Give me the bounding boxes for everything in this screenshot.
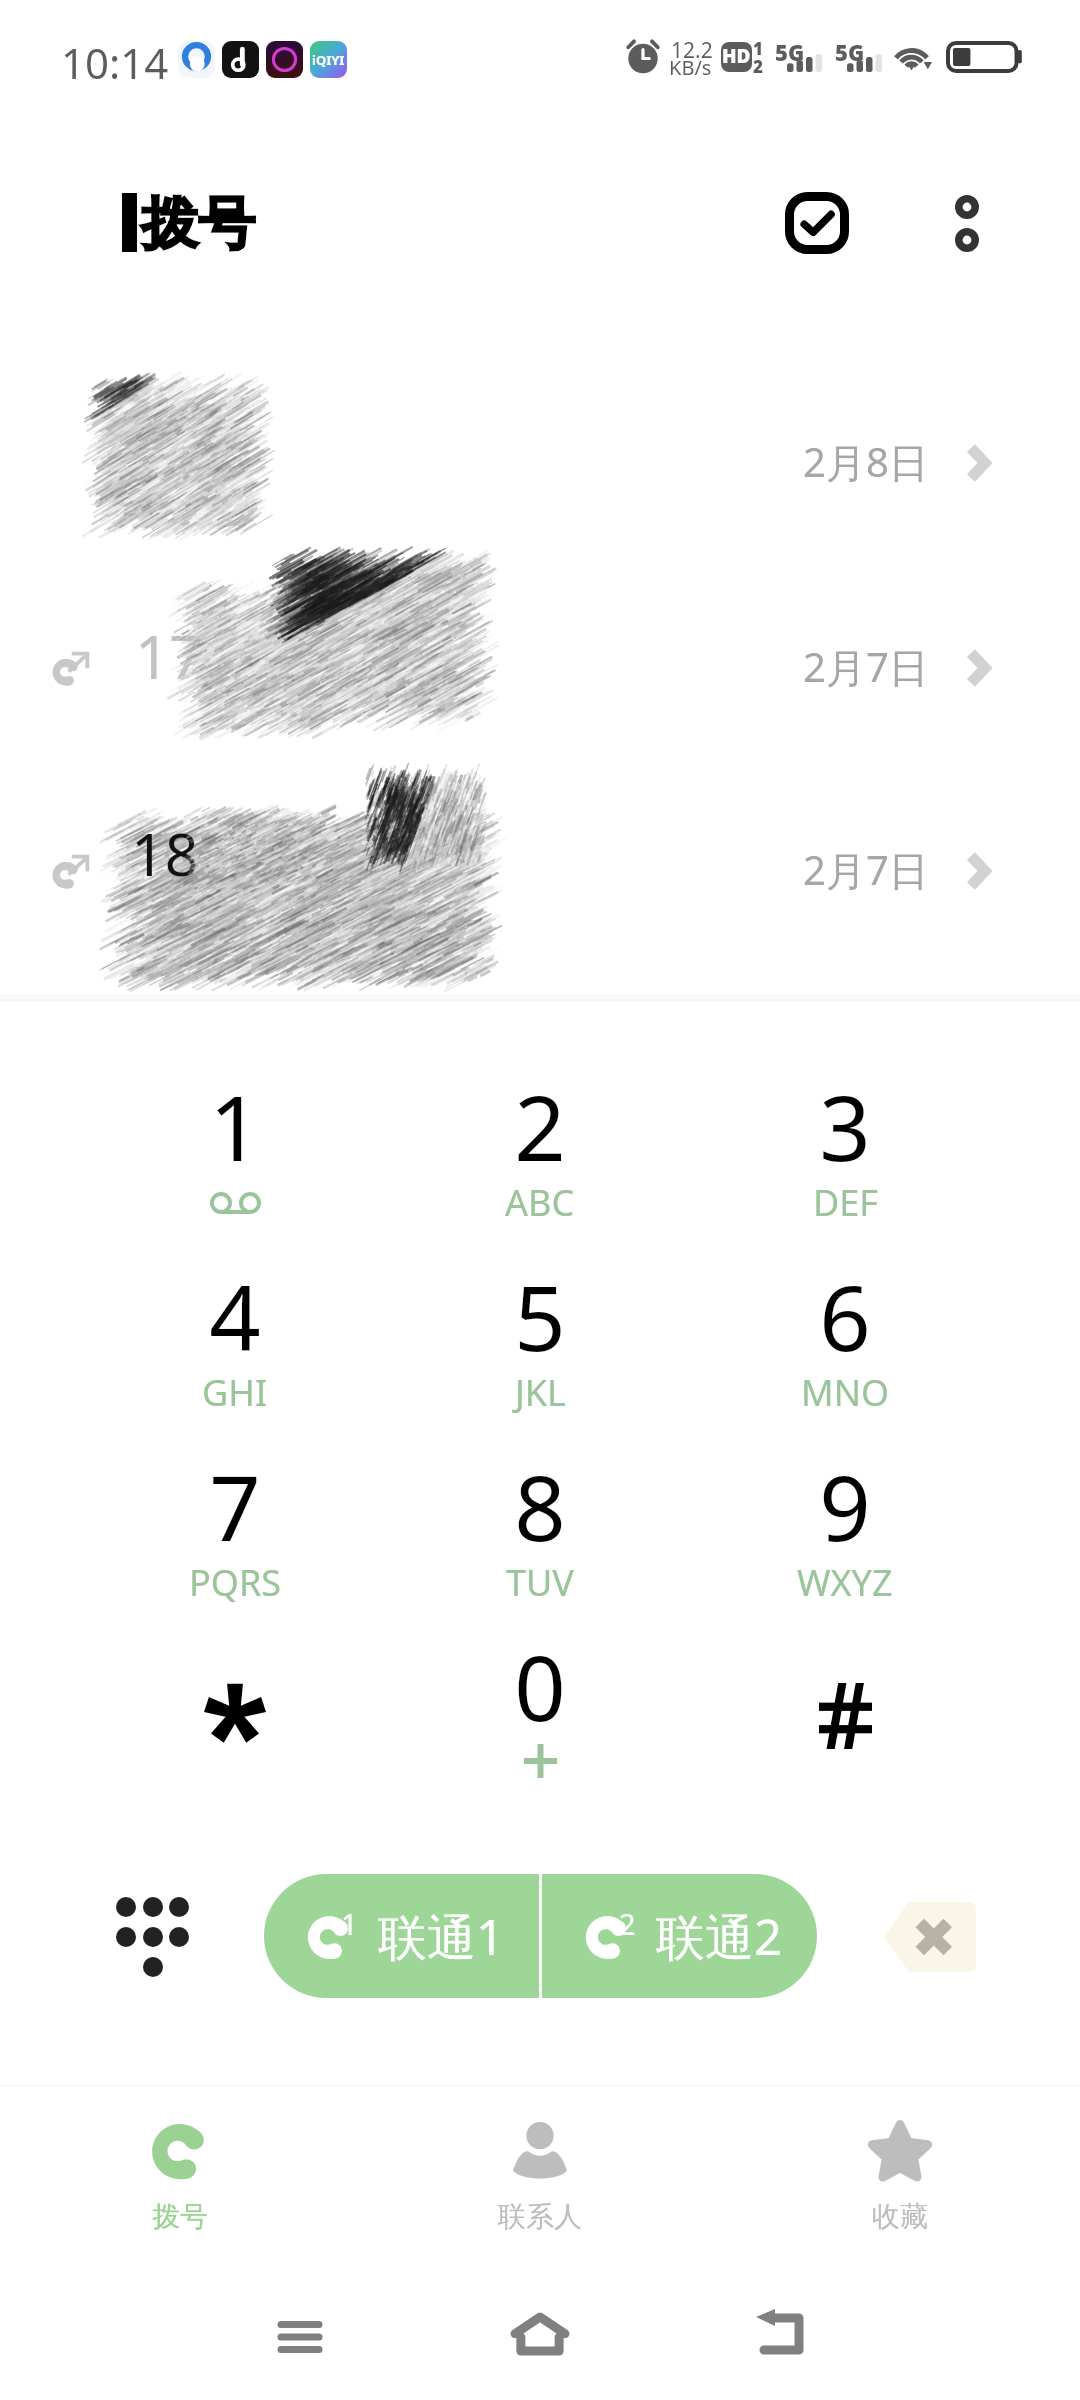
- staticText: 6: [819, 1255, 871, 1378]
- staticText: GHI: [202, 1368, 268, 1417]
- staticText: 755: [198, 813, 300, 893]
- staticText: 2: [514, 1065, 566, 1188]
- button[interactable]: 1: [83, 1045, 387, 1235]
- staticText: 2月8日: [803, 434, 929, 489]
- staticText: 5G: [835, 37, 865, 67]
- staticText: 8: [514, 1445, 566, 1568]
- button[interactable]: 7: [83, 1425, 387, 1615]
- staticText: 拨号: [152, 2199, 208, 2234]
- staticText: 1: [341, 1904, 358, 1943]
- button[interactable]: 拨号: [50, 2100, 310, 2250]
- staticText: 收藏: [872, 2199, 928, 2234]
- staticText: 1: [753, 37, 763, 60]
- staticText: 0: [514, 1625, 566, 1748]
- staticText: iQIYI: [312, 51, 345, 69]
- button[interactable]: 2: [388, 1045, 692, 1235]
- button[interactable]: 2月8日: [0, 361, 1080, 565]
- button[interactable]: 6: [693, 1235, 997, 1425]
- staticText: ABC: [505, 1178, 575, 1227]
- button[interactable]: Hide keypad: [96, 1876, 216, 1998]
- staticText: 3: [819, 1065, 871, 1188]
- button[interactable]: 1: [264, 1874, 539, 1998]
- staticText: 2: [619, 1904, 636, 1943]
- button[interactable]: 3: [693, 1045, 997, 1235]
- button[interactable]: Back: [720, 2274, 840, 2394]
- staticText: 5G: [775, 37, 805, 67]
- staticText: 5: [514, 1255, 566, 1378]
- staticText: HD: [722, 43, 751, 69]
- staticText: MNO: [801, 1368, 890, 1417]
- button[interactable]: 8: [388, 1425, 692, 1615]
- button[interactable]: 2月7日: [0, 566, 1080, 770]
- button[interactable]: Delete: [880, 1898, 976, 1976]
- staticText: 12.2: [671, 36, 713, 65]
- staticText: PQRS: [189, 1558, 282, 1607]
- button[interactable]: 0: [388, 1605, 692, 1795]
- staticText: TUV: [506, 1558, 574, 1607]
- button[interactable]: 2: [542, 1874, 817, 1998]
- staticText: JKL: [515, 1368, 566, 1417]
- staticText: 联通2: [656, 1903, 783, 1970]
- button[interactable]: More options: [915, 171, 1019, 275]
- button[interactable]: [83, 1605, 387, 1795]
- button[interactable]: 4: [83, 1235, 387, 1425]
- button[interactable]: 9: [693, 1425, 997, 1615]
- staticText: 1: [209, 1065, 261, 1188]
- staticText: 2月7日: [803, 639, 929, 694]
- staticText: KB/s: [669, 54, 712, 81]
- button[interactable]: [693, 1605, 997, 1795]
- staticText: 9: [819, 1445, 871, 1568]
- button[interactable]: 2月7日: [0, 769, 1080, 973]
- staticText: 4: [209, 1255, 261, 1378]
- staticText: DEF: [813, 1178, 878, 1227]
- staticText: 18: [131, 813, 199, 893]
- staticText: 2月7日: [803, 842, 929, 897]
- staticText: 7: [209, 1445, 261, 1568]
- staticText: 联通1: [378, 1903, 505, 1970]
- staticText: WXYZ: [797, 1558, 893, 1607]
- staticText: 联系人: [498, 2199, 582, 2234]
- staticText: 10:14: [61, 34, 169, 91]
- button[interactable]: 5: [388, 1235, 692, 1425]
- staticText: 拨号: [141, 188, 255, 260]
- button[interactable]: Recent apps: [240, 2277, 360, 2397]
- staticText: 2: [753, 55, 763, 78]
- button[interactable]: 联系人: [410, 2100, 670, 2250]
- button[interactable]: 收藏: [770, 2100, 1030, 2250]
- staticText: 17: [135, 615, 204, 697]
- button[interactable]: Home: [480, 2274, 600, 2394]
- button[interactable]: Select calls: [765, 171, 869, 275]
